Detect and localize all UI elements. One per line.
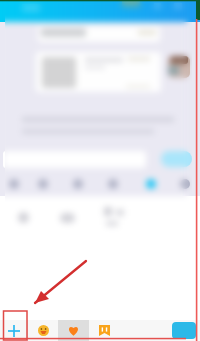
button[interactable]: Add sticker [0, 320, 27, 341]
button[interactable]: Send [172, 322, 196, 339]
button[interactable]: Favourite stickers [58, 320, 89, 341]
button[interactable]: Emoji [28, 320, 58, 341]
button[interactable]: Sticker pack [89, 320, 120, 341]
